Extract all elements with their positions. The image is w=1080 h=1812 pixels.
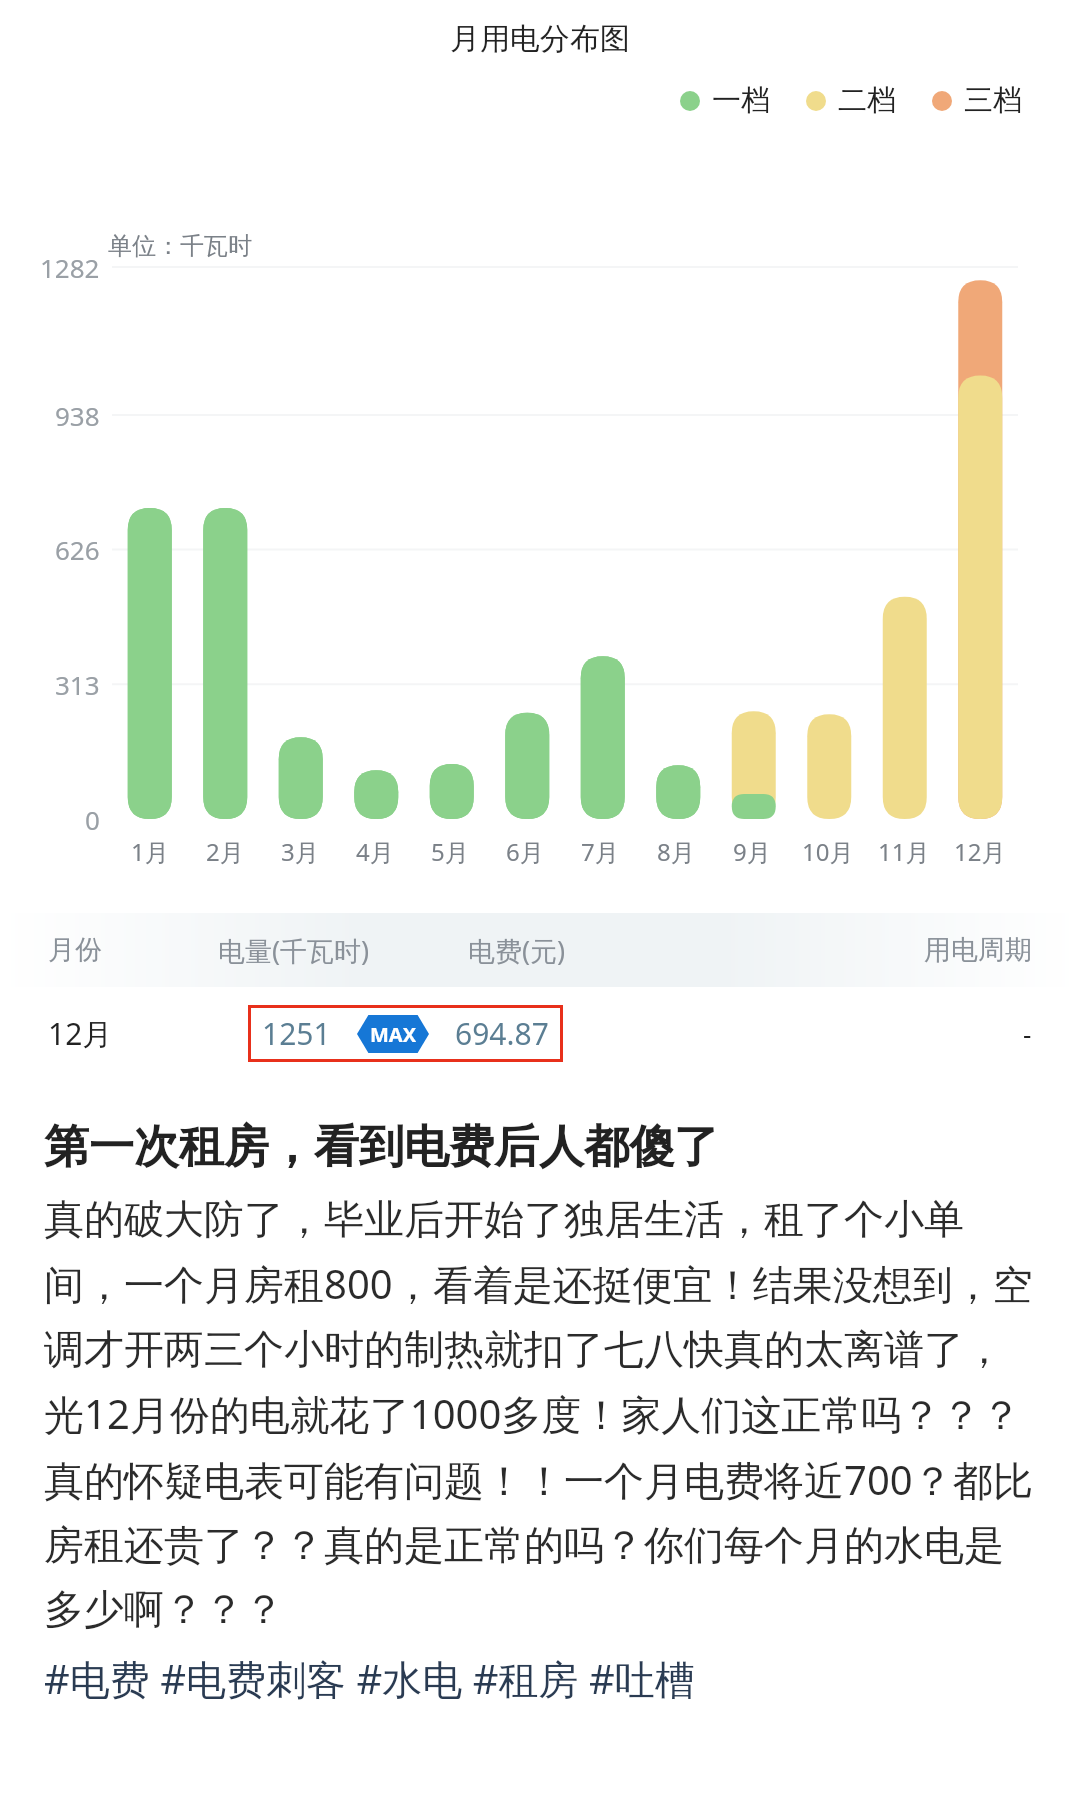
staticText: 7月: [581, 835, 619, 868]
staticText: 第一次租房，看到电费后人都傻了: [44, 1119, 719, 1176]
staticText: 用电周期: [924, 933, 1032, 967]
other: MAX: [357, 1015, 429, 1053]
staticText: 11月: [878, 835, 930, 868]
staticText: 0: [85, 802, 100, 837]
staticText: 电费(元): [468, 932, 924, 969]
staticText: 1282: [40, 250, 100, 285]
staticText: 月份: [48, 933, 218, 967]
staticText: 5月: [431, 835, 469, 868]
button[interactable]: 三档: [932, 82, 1022, 119]
button[interactable]: 二档: [806, 82, 896, 119]
staticText: 9月: [733, 835, 771, 868]
staticText: #电费 #电费刺客 #水电 #租房 #吐槽: [44, 1651, 695, 1706]
staticText: 1251: [262, 1013, 331, 1054]
button[interactable]: 一档: [680, 82, 770, 119]
staticText: 二档: [838, 82, 896, 119]
staticText: 4月: [356, 835, 394, 868]
staticText: 3月: [281, 835, 319, 868]
staticText: 12月: [48, 1013, 218, 1054]
staticText: 694.87: [455, 1013, 549, 1054]
staticText: 电量(千瓦时): [218, 932, 468, 969]
button[interactable]: 12月: [0, 987, 1080, 1079]
staticText: 6月: [506, 835, 544, 868]
staticText: 313: [55, 667, 100, 702]
staticText: 626: [55, 532, 100, 567]
staticText: 单位：千瓦时: [108, 231, 252, 261]
staticText: 三档: [964, 82, 1022, 119]
staticText: 真的破大防了，毕业后开始了独居生活，租了个小单间，一个月房租800，看着是还挺便…: [44, 1194, 1036, 1635]
staticText: 938: [55, 398, 100, 433]
staticText: 10月: [802, 835, 854, 868]
staticText: 2月: [206, 835, 244, 868]
staticText: 8月: [657, 835, 695, 868]
staticText: 12月: [954, 835, 1006, 868]
staticText: MAX: [370, 1021, 417, 1048]
staticText: -: [1023, 1016, 1032, 1051]
staticText: 1月: [131, 835, 169, 868]
staticText: 一档: [712, 82, 770, 119]
staticText: 月用电分布图: [450, 20, 630, 58]
